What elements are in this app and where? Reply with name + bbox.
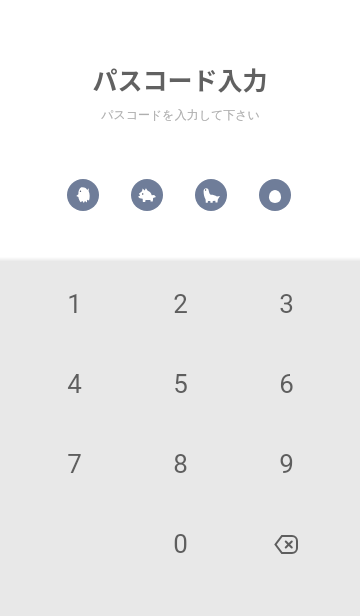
- button[interactable]: 2: [127, 264, 233, 344]
- staticText: 9: [279, 449, 294, 479]
- staticText: 6: [279, 369, 294, 399]
- button[interactable]: 0: [127, 504, 233, 584]
- button[interactable]: 8: [127, 424, 233, 504]
- staticText: 5: [173, 369, 188, 399]
- button[interactable]: 6: [233, 344, 339, 424]
- staticText: 3: [279, 289, 294, 319]
- staticText: 8: [173, 449, 188, 479]
- staticText: 7: [67, 449, 82, 479]
- staticText: パスコード入力: [92, 61, 268, 97]
- staticText: 1: [67, 289, 82, 319]
- button[interactable]: 7: [21, 424, 127, 504]
- staticText: パスコードを入力して下さい: [101, 107, 260, 122]
- button[interactable]: 9: [233, 424, 339, 504]
- button[interactable]: Backspace: [233, 504, 339, 584]
- button[interactable]: 4: [21, 344, 127, 424]
- staticText: 4: [67, 369, 82, 399]
- button[interactable]: 3: [233, 264, 339, 344]
- button[interactable]: 5: [127, 344, 233, 424]
- staticText: 0: [173, 529, 188, 559]
- staticText: 2: [173, 289, 188, 319]
- button[interactable]: 1: [21, 264, 127, 344]
